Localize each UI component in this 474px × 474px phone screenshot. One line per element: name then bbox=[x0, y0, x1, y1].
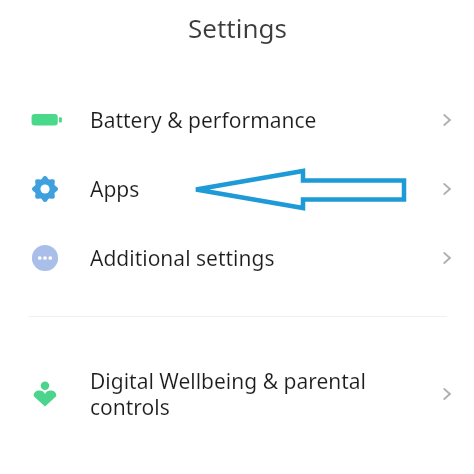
staticText: Apps bbox=[90, 175, 140, 204]
button[interactable]: Additional settings bbox=[0, 235, 474, 281]
staticText: Additional settings bbox=[90, 244, 275, 273]
other: Battery and performance bbox=[430, 97, 464, 143]
other: Additional settings bbox=[430, 235, 464, 281]
button[interactable]: Apps bbox=[0, 166, 474, 212]
staticText: Settings bbox=[188, 10, 287, 45]
staticText: Digital Wellbeing & parental controls bbox=[90, 367, 367, 421]
other: Digital Wellbeing and parental controls bbox=[430, 363, 464, 425]
button[interactable]: Digital Wellbeing & parental controls bbox=[0, 363, 474, 425]
button[interactable]: Battery & performance bbox=[0, 97, 474, 143]
other: Apps bbox=[430, 166, 464, 212]
staticText: Battery & performance bbox=[90, 106, 317, 135]
